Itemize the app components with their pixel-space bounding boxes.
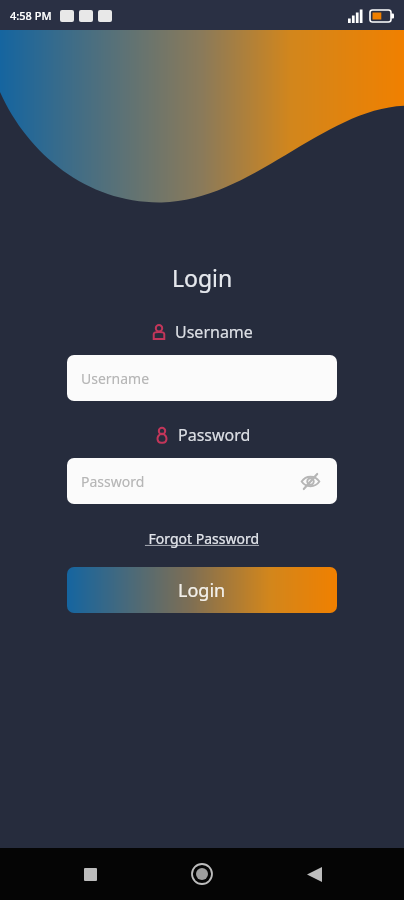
staticText: Login [178,578,226,603]
button[interactable]: Login [67,567,337,613]
button[interactable]: Home [180,852,224,896]
staticText: Login [172,262,233,293]
button[interactable]: Password [67,458,337,504]
staticText: Username [175,321,253,343]
button[interactable]: Forgot Password [137,526,267,551]
button[interactable]: Recent apps [68,852,112,896]
button[interactable]: Username [67,355,337,401]
staticText: Password [178,424,251,446]
button[interactable]: Back [292,852,336,896]
staticText: 4:58 PM [10,8,52,23]
button[interactable]: Show password [297,468,323,494]
staticText: Username [81,369,150,388]
staticText: Password [81,472,145,491]
staticText: Forgot Password [143,529,261,548]
